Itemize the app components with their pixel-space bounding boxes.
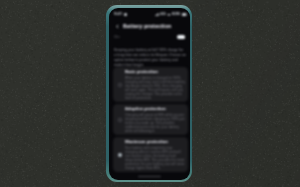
staticText: Adaptive protection: [125, 106, 166, 112]
button[interactable]: Battery protection toggle: [177, 35, 185, 39]
staticText: Maximum protection: [125, 139, 169, 145]
button[interactable]: Adaptive protection: [113, 104, 188, 135]
staticText: 83%: [172, 11, 181, 17]
staticText: Keeping your battery at full 100% charge…: [114, 47, 186, 67]
staticText: 4G: [160, 11, 166, 17]
staticText: On: [114, 34, 120, 40]
staticText: Charging will pause at 80% while you are…: [125, 113, 185, 133]
staticText: When your battery is charged to 100%, ch…: [125, 76, 185, 100]
button[interactable]: Basic protection: [113, 67, 188, 102]
staticText: Your battery will completely stop chargi…: [125, 146, 185, 170]
button[interactable]: Maximum protection: [113, 137, 188, 172]
button[interactable]: Back: [113, 22, 121, 30]
staticText: 9:41: [114, 11, 123, 17]
staticText: Battery protection: [123, 22, 172, 29]
staticText: Basic protection: [125, 69, 158, 75]
